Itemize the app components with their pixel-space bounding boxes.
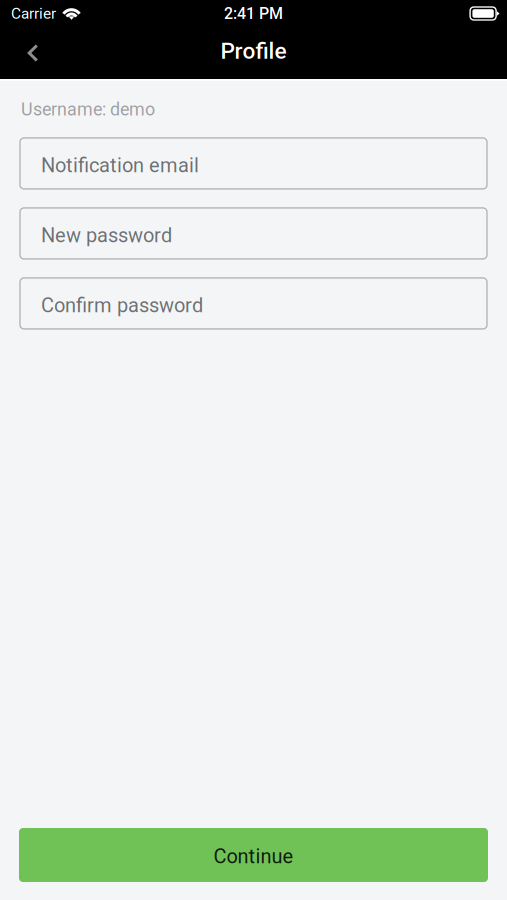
staticText: Notification email <box>41 154 199 177</box>
staticText: Confirm password <box>41 294 203 317</box>
staticText: New password <box>41 224 172 247</box>
staticText: Continue <box>213 845 293 868</box>
staticText: Profile <box>220 38 286 64</box>
button[interactable]: Back <box>11 31 55 75</box>
button[interactable]: New password <box>20 208 487 259</box>
button[interactable]: Continue <box>19 828 488 882</box>
button[interactable]: Notification email <box>20 138 487 189</box>
staticText: 2:41 PM <box>224 4 283 23</box>
staticText: Username: demo <box>21 99 155 120</box>
staticText: Carrier <box>11 4 56 22</box>
button[interactable]: Confirm password <box>20 278 487 329</box>
